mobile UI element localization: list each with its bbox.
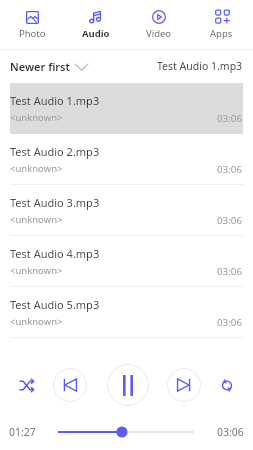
- button[interactable]: Photo: [0, 0, 64, 49]
- staticText: Test Audio 1.mp3: [10, 93, 100, 108]
- staticText: 03:06: [217, 316, 243, 329]
- staticText: 01:27: [9, 425, 36, 439]
- button[interactable]: Repeat: [214, 372, 240, 398]
- button[interactable]: Test Audio 1.mp3: [0, 83, 253, 134]
- staticText: <unknown>: [10, 162, 63, 175]
- staticText: <unknown>: [10, 213, 63, 226]
- staticText: Test Audio 4.mp3: [10, 246, 100, 261]
- button[interactable]: Video: [127, 0, 190, 49]
- button[interactable]: Apps: [190, 0, 253, 49]
- staticText: <unknown>: [10, 111, 63, 124]
- staticText: 03:06: [217, 265, 243, 278]
- button[interactable]: Test Audio 4.mp3: [0, 236, 253, 287]
- button[interactable]: Test Audio 3.mp3: [0, 185, 253, 236]
- staticText: 03:06: [217, 163, 243, 176]
- staticText: Test Audio 1.mp3: [157, 59, 243, 73]
- staticText: 03:06: [217, 112, 243, 125]
- staticText: <unknown>: [10, 315, 63, 328]
- button[interactable]: Test Audio 2.mp3: [0, 134, 253, 185]
- staticText: Photo: [19, 27, 46, 40]
- staticText: Test Audio 2.mp3: [10, 144, 100, 159]
- button[interactable]: Test Audio 5.mp3: [0, 287, 253, 338]
- button[interactable]: Next: [167, 368, 201, 402]
- button[interactable]: Audio: [64, 0, 127, 49]
- staticText: 03:06: [217, 214, 243, 227]
- staticText: Apps: [210, 27, 233, 40]
- button[interactable]: Previous: [53, 368, 87, 402]
- staticText: Video: [146, 27, 172, 40]
- button[interactable]: Pause: [107, 364, 149, 406]
- staticText: Audio: [82, 27, 110, 40]
- staticText: Test Audio 3.mp3: [10, 195, 100, 210]
- staticText: Newer first: [10, 59, 70, 74]
- button[interactable]: Newer first: [10, 59, 89, 74]
- staticText: 03:06: [217, 425, 244, 439]
- button[interactable]: Shuffle: [14, 372, 40, 398]
- staticText: <unknown>: [10, 264, 63, 277]
- staticText: Test Audio 5.mp3: [10, 297, 100, 312]
